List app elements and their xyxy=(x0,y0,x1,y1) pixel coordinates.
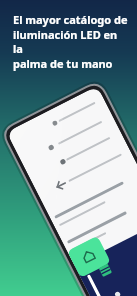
staticText: El mayor catálogo de xyxy=(13,12,128,27)
staticText: palma de tu mano xyxy=(13,56,113,71)
button[interactable]: El mayor catálogo de xyxy=(13,12,129,71)
button[interactable]: App preview xyxy=(37,116,137,296)
staticText: iluminación LED en la xyxy=(13,27,129,56)
